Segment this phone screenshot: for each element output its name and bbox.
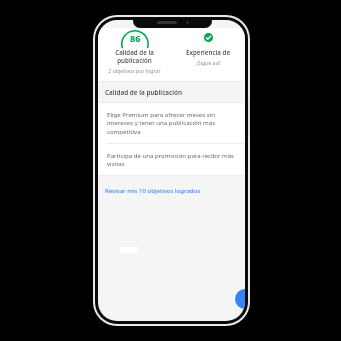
staticText: Elige Premium para ofrecer meses sin int… — [107, 110, 236, 136]
staticText: 2 objetivos por lograr — [108, 67, 161, 74]
button[interactable]: Elige Premium para ofrecer meses sin int… — [98, 103, 245, 143]
button[interactable]: Participa de una promoción para recibir … — [98, 144, 245, 175]
staticText: 86 — [130, 32, 141, 44]
staticText: Revisar mis 10 objetivos logrados — [105, 186, 201, 194]
staticText: Participa de una promoción para recibir … — [107, 151, 236, 168]
staticText: Calidad de la publicación — [105, 88, 183, 97]
staticText: Experiencia de compra — [174, 48, 242, 56]
button[interactable]: Revisar mis 10 objetivos logrados — [98, 183, 208, 197]
button[interactable]: Experiencia de compra — [171, 30, 245, 66]
button[interactable]: 86 — [98, 30, 171, 74]
staticText: Calidad de la publicación — [101, 48, 168, 64]
staticText: ¡Sigue así! — [196, 59, 221, 66]
button[interactable]: Nueva publicación — [235, 289, 245, 309]
